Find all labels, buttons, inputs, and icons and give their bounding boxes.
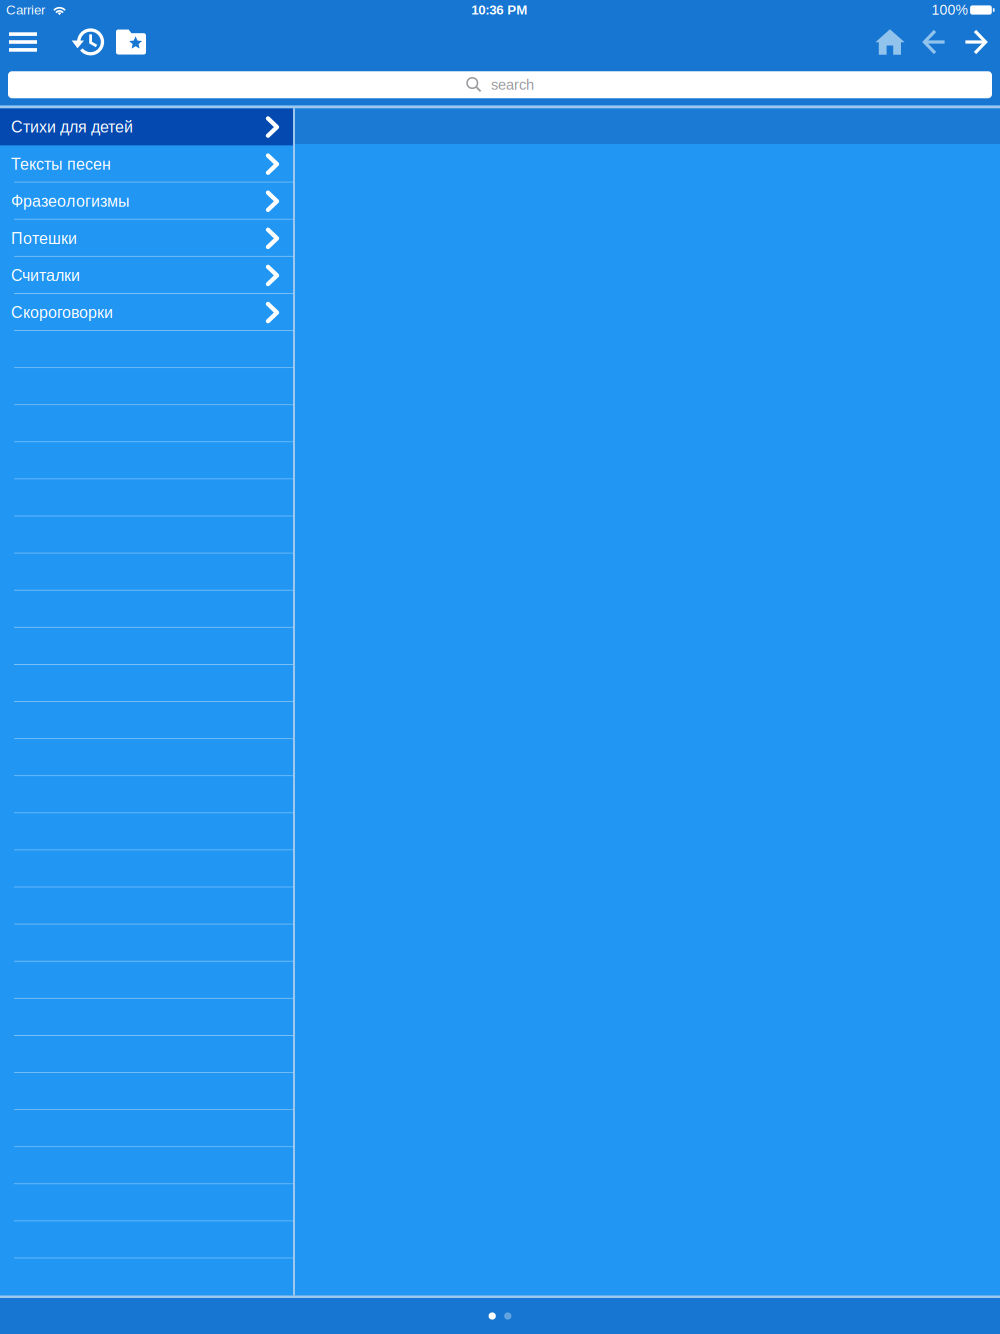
button[interactable]: Favorites	[114, 20, 148, 63]
button[interactable]: search	[0, 64, 1000, 105]
staticText: 10:36 PM	[471, 3, 527, 17]
staticText: Тексты песен	[11, 155, 111, 173]
button[interactable]: Потешки	[0, 220, 293, 257]
button[interactable]: Стихи для детей	[0, 108, 293, 146]
staticText: Carrier	[6, 3, 45, 17]
staticText: Считалки	[11, 266, 80, 284]
button[interactable]: Home	[872, 20, 908, 64]
button[interactable]: Back	[921, 20, 948, 64]
staticText: Стихи для детей	[11, 118, 133, 136]
staticText: search	[491, 77, 534, 93]
staticText: Фразеологизмы	[11, 192, 130, 210]
button[interactable]: Скороговорки	[0, 294, 293, 331]
staticText: Потешки	[11, 229, 77, 247]
staticText: Скороговорки	[11, 304, 113, 321]
button[interactable]: Menu	[4, 20, 42, 64]
button[interactable]: Forward	[962, 20, 989, 64]
staticText: 100%	[932, 2, 968, 18]
button[interactable]: Считалки	[0, 257, 293, 294]
button[interactable]: History	[70, 20, 106, 64]
button[interactable]: Тексты песен	[0, 146, 293, 183]
button[interactable]: Фразеологизмы	[0, 183, 293, 220]
